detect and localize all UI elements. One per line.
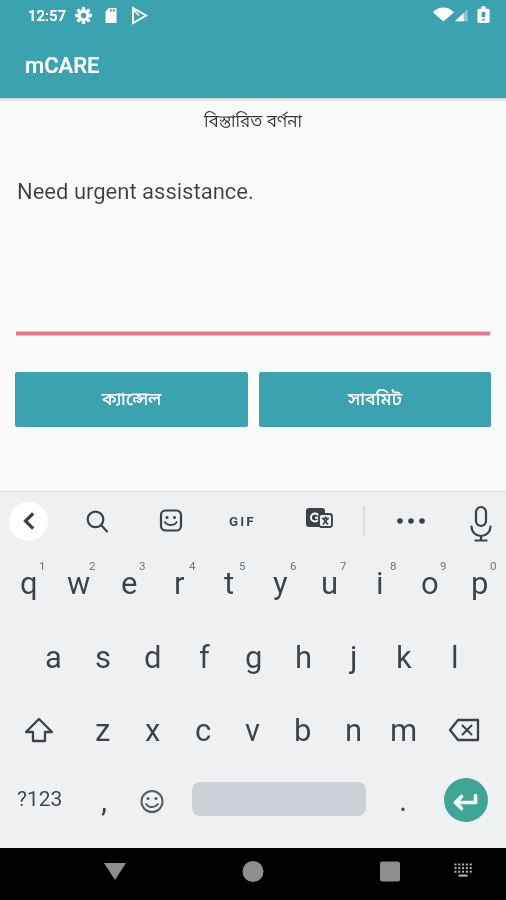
staticText: 9 (440, 559, 447, 572)
staticText: c (195, 712, 212, 748)
button[interactable]: r (154, 550, 204, 616)
button[interactable]: h (279, 624, 329, 690)
staticText: h (295, 639, 313, 675)
staticText: 0 (490, 559, 497, 572)
button[interactable]: v (228, 697, 278, 763)
staticText: সাবমিট (348, 388, 402, 412)
staticText: 6 (290, 559, 297, 572)
button[interactable]: w (54, 550, 104, 616)
button[interactable]: x (128, 697, 178, 763)
staticText: GIF (229, 513, 256, 529)
button[interactable]: l (430, 624, 480, 690)
staticText: d (144, 639, 162, 675)
staticText: x (145, 712, 161, 748)
button[interactable] (360, 848, 420, 900)
button[interactable] (137, 786, 167, 816)
staticText: b (294, 712, 312, 748)
staticText: r (174, 565, 185, 601)
button[interactable] (223, 848, 283, 900)
staticText: p (471, 565, 489, 601)
button[interactable]: z (78, 697, 128, 763)
staticText: v (245, 712, 261, 748)
staticText: 3 (139, 559, 146, 572)
button[interactable]: c (178, 697, 228, 763)
button[interactable] (440, 848, 486, 900)
staticText: y (273, 565, 288, 601)
staticText: q (20, 565, 38, 601)
staticText: 7 (340, 559, 347, 572)
button[interactable]: n (329, 697, 379, 763)
staticText: j (350, 639, 358, 675)
staticText: z (95, 712, 111, 748)
staticText: . (399, 782, 408, 818)
staticText: , (101, 782, 108, 818)
button[interactable] (444, 778, 488, 822)
staticText: w (67, 565, 91, 601)
staticText: m (390, 712, 418, 748)
button[interactable]: t (204, 550, 254, 616)
staticText: ?123 (17, 787, 63, 812)
staticText: g (245, 639, 263, 675)
staticText: k (396, 639, 412, 675)
staticText: t (224, 565, 235, 601)
button[interactable]: j (329, 624, 379, 690)
button[interactable]: u (305, 550, 355, 616)
button[interactable]: ?123 (0, 764, 100, 834)
button[interactable] (85, 848, 145, 900)
button[interactable]: o (405, 550, 455, 616)
staticText: 1 (39, 559, 46, 572)
staticText: e (121, 565, 138, 601)
button[interactable]: p (455, 550, 505, 616)
button[interactable]: k (379, 624, 429, 690)
staticText: 4 (189, 559, 196, 572)
staticText: n (345, 712, 363, 748)
staticText: mCARE (25, 53, 100, 79)
button[interactable]: e (104, 550, 154, 616)
button[interactable]: , (44, 765, 164, 835)
button[interactable]: q (4, 550, 54, 616)
button[interactable]: y (255, 550, 305, 616)
button[interactable]: g (229, 624, 279, 690)
staticText: 12:57 (28, 7, 67, 25)
button[interactable]: d (128, 624, 178, 690)
button[interactable] (9, 502, 48, 541)
staticText: 2 (89, 559, 96, 572)
staticText: f (199, 639, 210, 675)
button[interactable]: সাবমিট (259, 372, 491, 427)
button[interactable] (192, 782, 366, 816)
staticText: Need urgent assistance. (17, 179, 254, 205)
button[interactable]: f (179, 624, 229, 690)
button[interactable]: i (355, 550, 405, 616)
button[interactable]: a (28, 624, 78, 690)
staticText: o (421, 565, 439, 601)
button[interactable]: s (78, 624, 128, 690)
staticText: l (451, 639, 459, 675)
button[interactable]: b (278, 697, 328, 763)
staticText: i (376, 565, 384, 601)
staticText: 5 (239, 559, 246, 572)
staticText: 8 (390, 559, 397, 572)
staticText: a (45, 639, 62, 675)
staticText: ক্যান্সেল (102, 388, 162, 412)
button[interactable] (0, 702, 76, 758)
button[interactable]: m (379, 697, 429, 763)
button[interactable]: GIF (182, 486, 302, 556)
button[interactable]: ক্যান্সেল (15, 372, 248, 427)
staticText: বিস্তারিত বর্ণনা (204, 111, 303, 134)
button[interactable]: . (343, 765, 463, 835)
staticText: s (95, 639, 111, 675)
button[interactable] (430, 702, 506, 758)
staticText: u (321, 565, 339, 601)
